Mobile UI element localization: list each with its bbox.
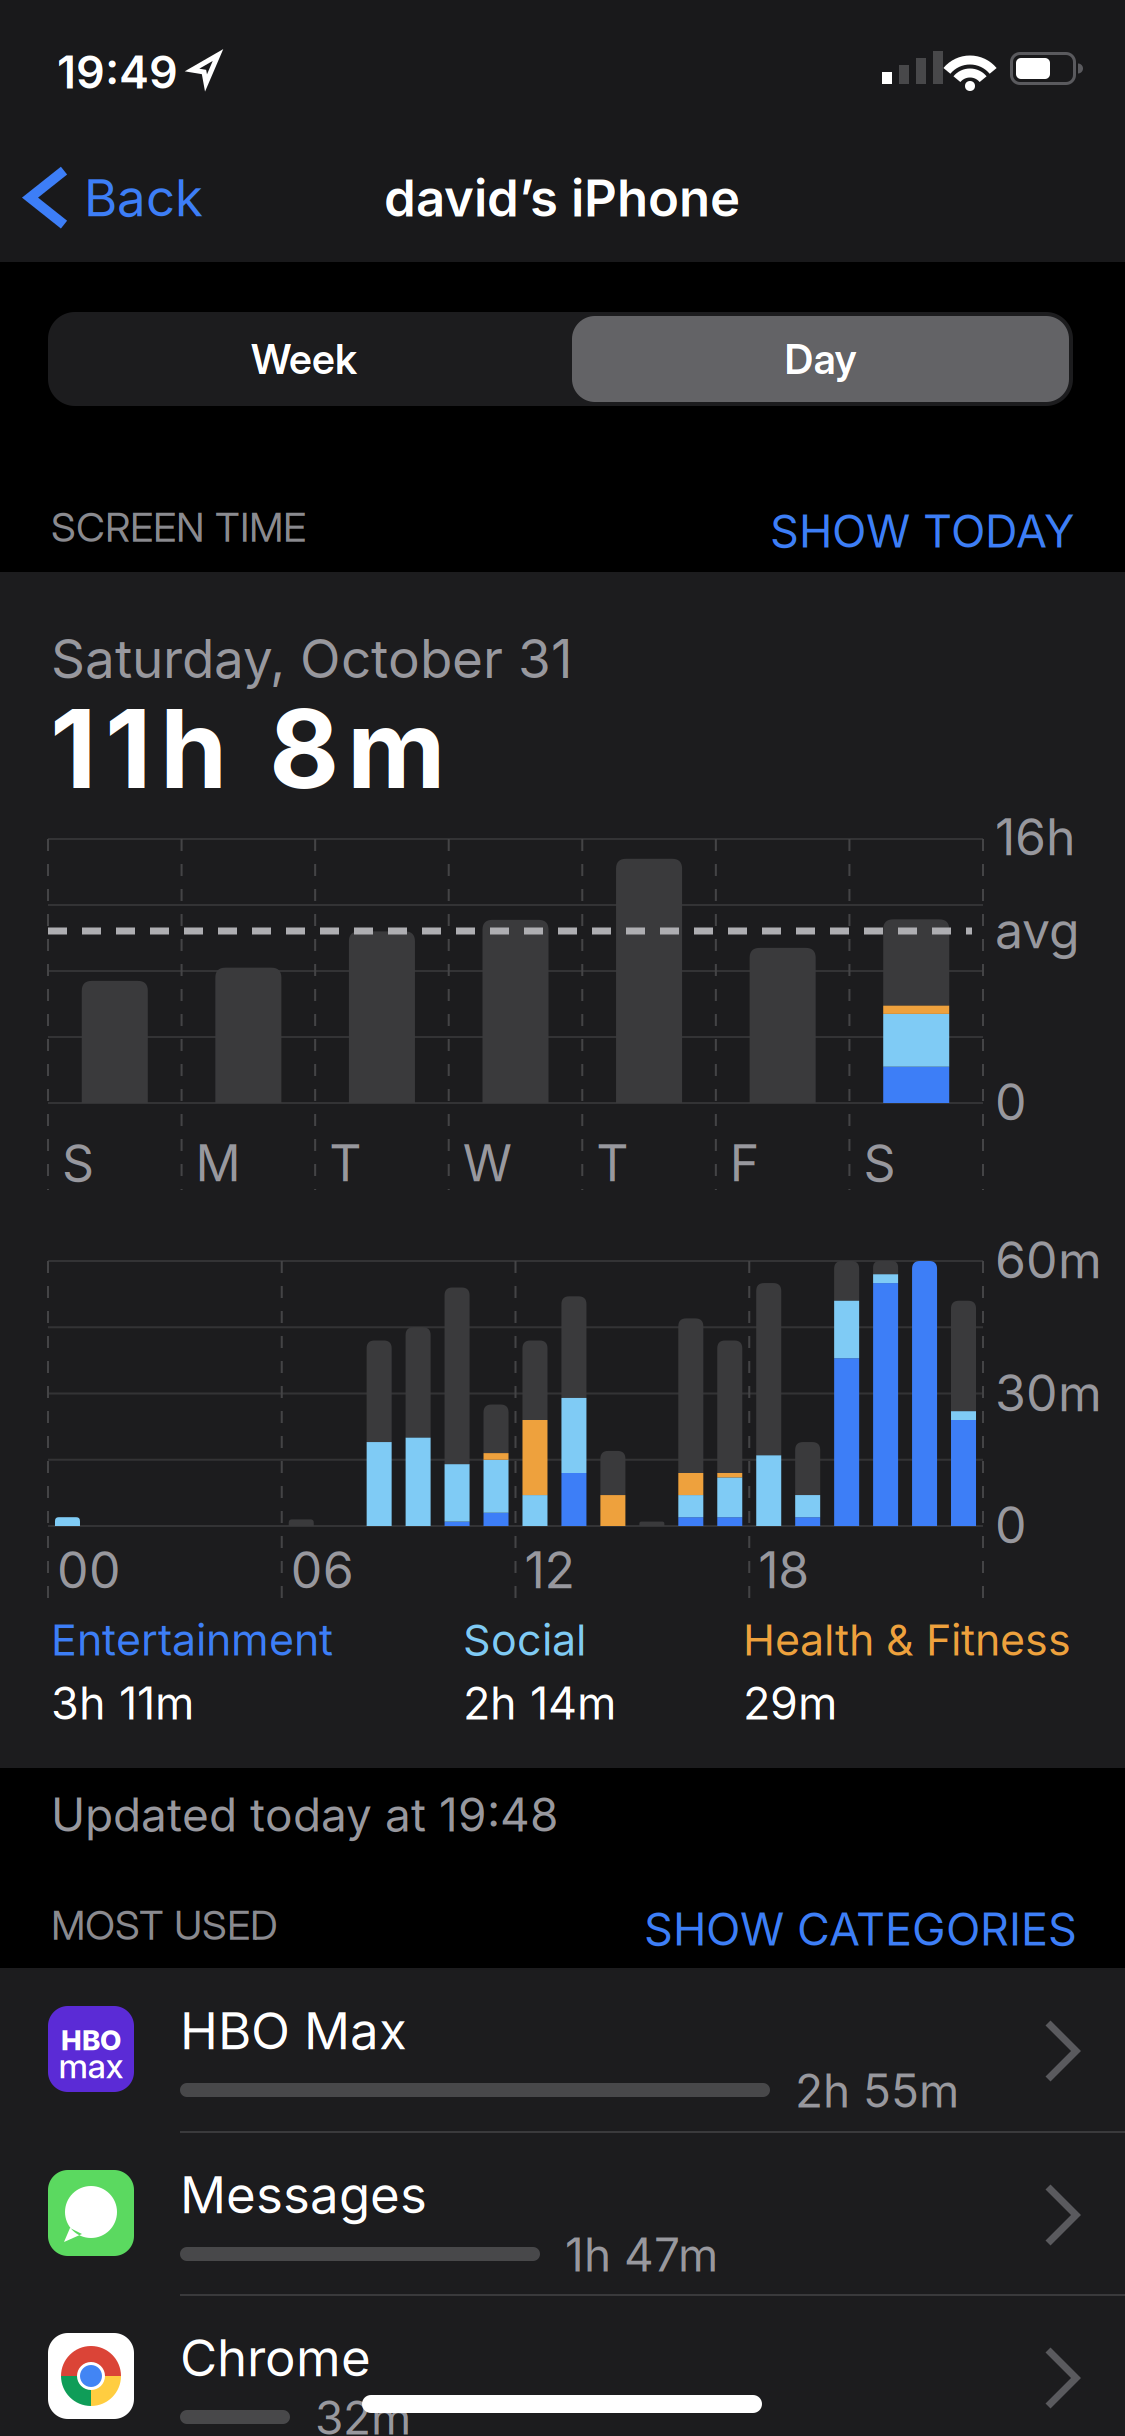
staticText: Entertainment (51, 1615, 333, 1665)
staticText: Saturday, October 31 (51, 628, 573, 690)
staticText: 11h 8m (50, 686, 446, 811)
staticText: 00 (57, 1541, 121, 1599)
staticText: max (58, 2046, 123, 2086)
staticText: avg (995, 901, 1080, 959)
button[interactable]: Messages (0, 2132, 1125, 2295)
staticText: SHOW TODAY (770, 505, 1075, 557)
staticText: SHOW CATEGORIES (644, 1903, 1077, 1955)
button[interactable]: Chrome (0, 2295, 1125, 2436)
button[interactable]: SHOW TODAY (770, 505, 1075, 557)
staticText: Week (251, 335, 357, 383)
staticText: Updated today at 19:48 (51, 1788, 558, 1841)
staticText: S (62, 1134, 94, 1192)
staticText: 30m (995, 1364, 1102, 1422)
staticText: W (463, 1134, 512, 1192)
staticText: 60m (995, 1231, 1102, 1289)
staticText: Chrome (180, 2328, 371, 2387)
staticText: 12 (524, 1541, 574, 1599)
staticText: 0 (995, 1073, 1027, 1131)
staticText: T (329, 1134, 361, 1192)
button[interactable]: SHOW CATEGORIES (644, 1903, 1077, 1955)
staticText: 2h 14m (463, 1677, 616, 1729)
staticText: M (196, 1134, 241, 1192)
button[interactable]: Back (30, 168, 203, 227)
staticText: 2h 55m (795, 2064, 959, 2117)
staticText: Health & Fitness (743, 1615, 1071, 1665)
staticText: HBO Max (180, 2001, 407, 2060)
button[interactable]: Week (48, 312, 560, 406)
staticText: MOST USED (51, 1902, 278, 1948)
staticText: HBO (61, 2024, 121, 2056)
staticText: Back (84, 168, 203, 227)
button[interactable]: HBO (0, 1968, 1125, 2131)
staticText: 3h 11m (51, 1677, 194, 1729)
staticText: david’s iPhone (384, 168, 740, 228)
staticText: 18 (758, 1541, 809, 1599)
staticText: 19:49 (57, 46, 178, 98)
staticText: F (730, 1134, 760, 1192)
staticText: S (863, 1134, 895, 1192)
button[interactable]: Day (572, 316, 1069, 402)
staticText: 29m (743, 1677, 837, 1729)
staticText: 1h 47m (565, 2228, 718, 2281)
staticText: Messages (180, 2165, 427, 2224)
staticText: 16h (995, 808, 1076, 866)
staticText: 0 (995, 1496, 1027, 1554)
staticText: Day (784, 335, 856, 383)
staticText: Social (463, 1615, 586, 1665)
staticText: T (596, 1134, 628, 1192)
staticText: 32m (315, 2391, 411, 2436)
staticText: 06 (291, 1541, 354, 1599)
staticText: SCREEN TIME (51, 504, 306, 550)
